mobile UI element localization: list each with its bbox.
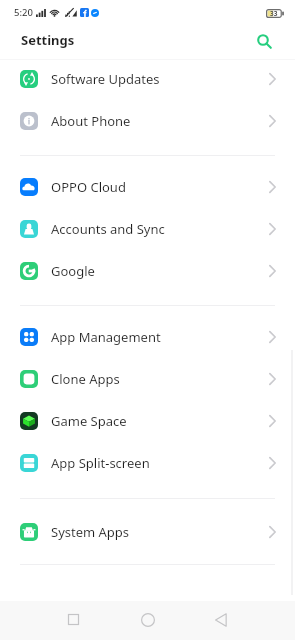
staticText: App Management [51, 328, 161, 346]
staticText: 5:20 [14, 6, 33, 19]
button[interactable]: Software Updates [0, 58, 295, 100]
staticText: Game Space [51, 412, 127, 430]
staticText: 33 [270, 9, 278, 18]
button[interactable]: System Apps [0, 511, 295, 553]
staticText: Clone Apps [51, 370, 120, 388]
button[interactable]: Search [252, 29, 276, 53]
button[interactable]: App Management [0, 316, 295, 358]
staticText: About Phone [51, 112, 131, 130]
staticText: System Apps [51, 523, 130, 541]
button[interactable]: Google [0, 250, 295, 292]
button[interactable]: App Split-screen [0, 442, 295, 484]
button[interactable]: About Phone [0, 100, 295, 142]
button[interactable]: Accounts and Sync [0, 208, 295, 250]
staticText: Google [51, 262, 95, 280]
staticText: Settings [21, 31, 75, 49]
button[interactable]: Home [126, 600, 169, 639]
staticText: Accounts and Sync [51, 220, 165, 238]
staticText: Software Updates [51, 70, 160, 88]
button[interactable]: Clone Apps [0, 358, 295, 400]
staticText: OPPO Cloud [51, 178, 126, 196]
button[interactable]: Recent apps [52, 600, 95, 639]
button[interactable]: Back [199, 600, 242, 639]
button[interactable]: OPPO Cloud [0, 166, 295, 208]
button[interactable]: Game Space [0, 400, 295, 442]
staticText: App Split-screen [51, 454, 150, 472]
